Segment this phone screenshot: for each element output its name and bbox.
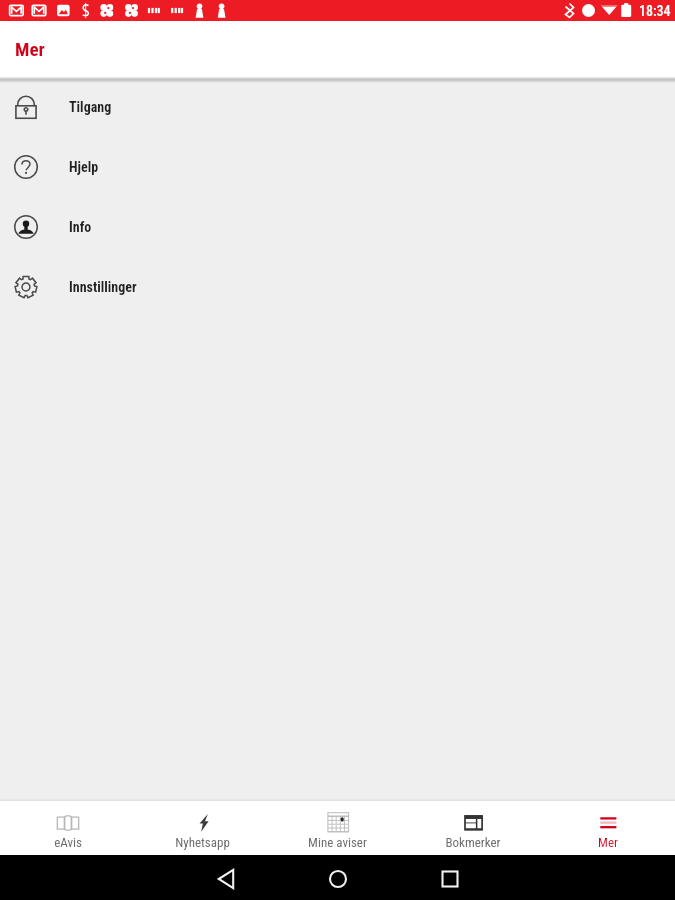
staticText: Nyhetsapp xyxy=(175,835,230,850)
staticText: Mer xyxy=(15,38,45,60)
staticText: Tilgang xyxy=(69,99,112,115)
button[interactable]: Bokmerker xyxy=(405,801,540,855)
button[interactable]: Home xyxy=(302,855,374,900)
staticText: eAvis xyxy=(54,835,82,850)
button[interactable]: Tilgang xyxy=(0,77,675,137)
button[interactable]: Recent apps xyxy=(414,855,486,900)
staticText: 18:34 xyxy=(639,3,671,19)
staticText: Innstillinger xyxy=(69,279,137,295)
button[interactable]: Hjelp xyxy=(0,137,675,197)
button[interactable]: Innstillinger xyxy=(0,257,675,317)
button[interactable]: Nyhetsapp xyxy=(135,801,270,855)
staticText: Mine aviser xyxy=(308,835,367,850)
staticText: Info xyxy=(69,219,92,235)
staticText: Bokmerker xyxy=(445,835,501,850)
button[interactable]: eAvis xyxy=(0,801,135,855)
button[interactable]: Mer xyxy=(540,801,675,855)
button[interactable]: Info xyxy=(0,197,675,257)
button[interactable]: Mine aviser xyxy=(270,801,405,855)
staticText: Mer xyxy=(598,835,618,850)
button[interactable]: Back xyxy=(190,855,262,900)
staticText: Hjelp xyxy=(69,159,99,175)
